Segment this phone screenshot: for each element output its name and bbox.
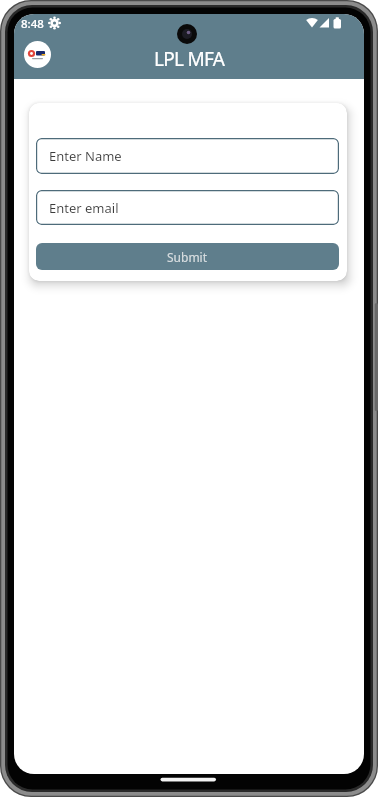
button[interactable]: Enter email bbox=[36, 190, 339, 225]
staticText: Enter Name bbox=[49, 147, 122, 165]
button[interactable] bbox=[24, 41, 51, 68]
staticText: Enter email bbox=[49, 199, 119, 217]
button[interactable]: Submit bbox=[36, 243, 339, 270]
staticText: 8:48 bbox=[21, 16, 44, 32]
staticText: Submit bbox=[167, 249, 208, 265]
button[interactable]: Enter Name bbox=[36, 138, 339, 174]
staticText: LPL MFA bbox=[154, 46, 225, 72]
